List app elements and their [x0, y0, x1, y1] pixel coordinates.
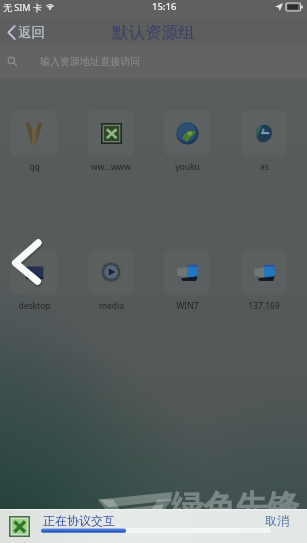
staticText: 15:16 [152, 0, 177, 13]
button[interactable]: ww...www [79, 110, 143, 173]
button[interactable]: 输入资源地址直接访问 [7, 55, 300, 68]
button[interactable]: 返回 [6, 24, 45, 41]
button[interactable]: 取消 [265, 513, 289, 528]
staticText: 137.169 [248, 300, 280, 312]
staticText: 返回 [18, 24, 45, 41]
staticText: 输入资源地址直接访问 [40, 55, 140, 68]
button[interactable]: WIN7 [155, 249, 219, 312]
button[interactable]: 137.169 [232, 249, 296, 312]
staticText: WIN7 [176, 300, 199, 312]
button[interactable]: media [79, 249, 143, 312]
staticText: 无 SIM 卡 [3, 1, 42, 13]
staticText: qq [29, 161, 40, 173]
staticText: 取消 [265, 513, 289, 528]
staticText: desktop [18, 300, 51, 312]
staticText: youku [175, 161, 200, 173]
button[interactable]: youku [155, 110, 219, 173]
staticText: media [99, 300, 124, 312]
staticText: 正在协议交互 [43, 513, 115, 528]
button[interactable]: desktop [2, 249, 66, 312]
button[interactable]: as [232, 110, 296, 173]
button[interactable]: qq [2, 110, 66, 173]
other: Back gesture [11, 238, 45, 286]
staticText: 绿色先锋 [171, 487, 299, 527]
staticText: ww...www [91, 161, 131, 173]
staticText: 默认资源组 [112, 22, 195, 43]
staticText: as [260, 161, 269, 173]
